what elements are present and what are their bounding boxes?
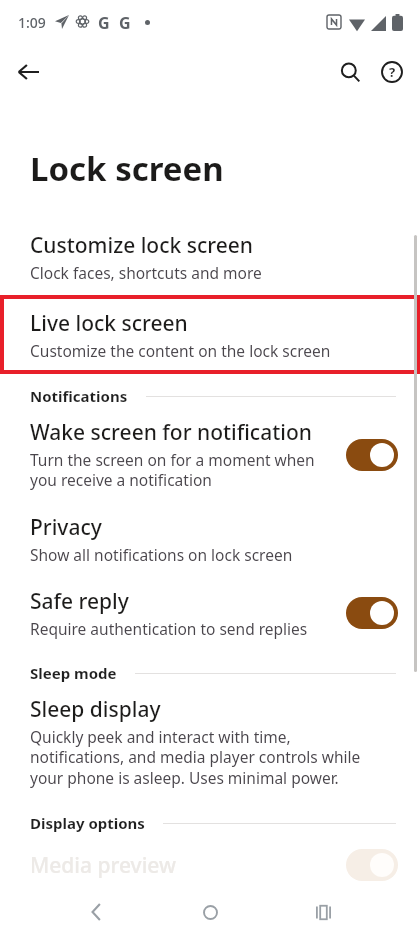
button[interactable]: Recent apps [306,895,340,929]
button[interactable]: Wake screen for notification [0,408,420,503]
button[interactable]: Search [330,52,370,92]
button[interactable]: Help [372,52,412,92]
button[interactable]: Privacy [0,503,420,577]
staticText: G [98,12,110,34]
staticText: Clock faces, shortcuts and more [30,262,262,283]
staticText: 1:09 [18,13,46,32]
staticText: Customize the content on the lock screen [30,340,331,361]
staticText: Privacy [30,513,102,542]
staticText: Wake screen for notification [30,418,312,447]
staticText: Sleep display [30,695,161,724]
button[interactable]: Toggle [346,597,398,629]
staticText: Show all notifications on lock screen [30,544,293,565]
button[interactable]: Back [8,52,48,92]
staticText: Sleep mode [30,663,117,683]
staticText: ? [389,63,396,81]
staticText: Safe reply [30,587,129,616]
button[interactable]: Toggle [346,439,398,471]
button[interactable]: Media preview [0,835,420,881]
staticText: Lock screen [30,146,224,191]
staticText: Turn the screen on for a moment when you… [30,449,315,491]
staticText: Notifications [30,386,128,406]
button[interactable]: Live lock screen [0,295,420,373]
button[interactable]: Sleep display [0,685,420,801]
staticText: Media preview [30,851,346,880]
staticText: Customize lock screen [30,231,253,260]
button[interactable]: Home [193,895,227,929]
button[interactable]: Safe reply [0,577,420,651]
button[interactable]: Back [80,895,114,929]
button[interactable]: Customize lock screen [0,221,420,295]
staticText: Display options [30,813,145,833]
staticText: Live lock screen [30,309,188,338]
staticText: G [119,12,131,34]
staticText: Quickly peek and interact with time, not… [30,726,361,789]
staticText: Require authentication to send replies [30,618,308,639]
